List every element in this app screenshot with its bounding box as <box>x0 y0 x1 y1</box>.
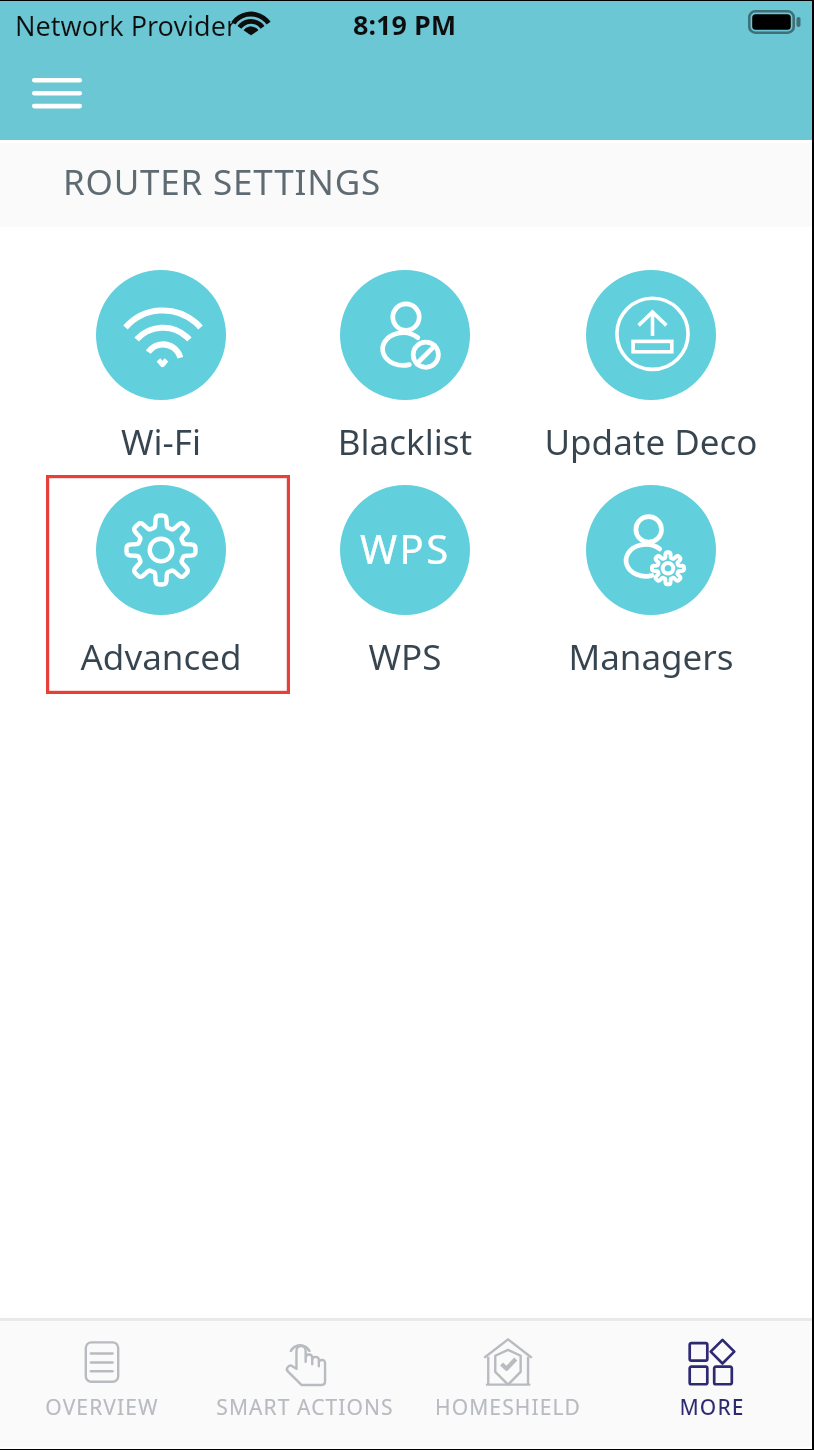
button[interactable]: Wi-Fi <box>51 270 271 466</box>
button[interactable]: HOMESHIELD <box>406 1321 610 1447</box>
staticText: MORE <box>679 1393 745 1422</box>
staticText: Managers <box>541 633 761 681</box>
button[interactable]: Menu <box>8 60 105 126</box>
staticText: ROUTER SETTINGS <box>63 158 381 206</box>
staticText: Blacklist <box>295 418 515 466</box>
staticText: HOMESHIELD <box>435 1393 581 1422</box>
button[interactable]: SMART ACTIONS <box>203 1321 406 1447</box>
button[interactable]: Update Deco <box>541 270 761 466</box>
button[interactable]: Managers <box>541 485 761 681</box>
staticText: Update Deco <box>541 418 761 466</box>
staticText: Network Provider <box>15 7 238 44</box>
staticText: Wi-Fi <box>51 418 271 466</box>
staticText: OVERVIEW <box>45 1393 159 1422</box>
staticText: 8:19 PM <box>353 6 457 43</box>
staticText: WPS <box>295 633 515 681</box>
button[interactable]: OVERVIEW <box>0 1321 203 1447</box>
staticText: WPS <box>360 521 451 575</box>
button[interactable]: WPS <box>295 485 515 681</box>
staticText: Advanced <box>51 633 271 681</box>
button[interactable]: MORE <box>610 1321 814 1447</box>
staticText: SMART ACTIONS <box>216 1393 394 1422</box>
button[interactable]: Blacklist <box>295 270 515 466</box>
button[interactable]: Advanced <box>51 485 271 681</box>
